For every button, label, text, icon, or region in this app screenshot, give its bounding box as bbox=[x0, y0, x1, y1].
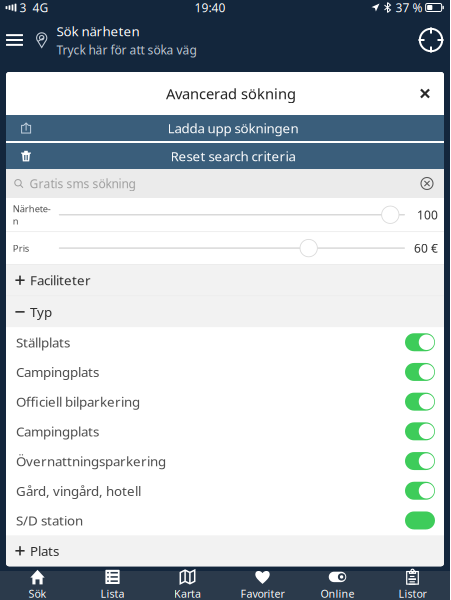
staticText: Gratis sms sökning bbox=[29, 175, 135, 191]
staticText: Gård, vingård, hotell bbox=[16, 482, 141, 500]
staticText: Sök bbox=[28, 586, 46, 600]
staticText: Listor bbox=[398, 586, 426, 600]
staticText: Karta bbox=[174, 586, 201, 600]
staticText: Sök närheten bbox=[56, 22, 139, 40]
button[interactable]: Sök bbox=[0, 571, 75, 600]
staticText: Pris bbox=[13, 242, 29, 254]
staticText: Favoriter bbox=[240, 586, 284, 600]
button[interactable]: Menu bbox=[6, 19, 36, 61]
button[interactable]: Listor bbox=[375, 571, 450, 600]
staticText: Campingplats bbox=[16, 422, 99, 440]
button[interactable]: Clear search bbox=[416, 172, 438, 194]
staticText: Övernattningsparkering bbox=[16, 452, 166, 470]
button[interactable]: Online bbox=[300, 571, 375, 600]
staticText: 60 € bbox=[414, 240, 438, 256]
button[interactable]: Faciliteter bbox=[6, 265, 444, 296]
staticText: Faciliteter bbox=[30, 271, 91, 289]
staticText: Typ bbox=[30, 303, 52, 321]
staticText: Närheten bbox=[13, 202, 51, 227]
button[interactable]: Plats bbox=[6, 535, 444, 566]
button[interactable]: Gård, vingård, hotell bbox=[6, 476, 444, 506]
staticText: 100 bbox=[417, 207, 438, 223]
staticText: Avancerad sökning bbox=[166, 84, 296, 103]
staticText: 19:40 bbox=[194, 0, 225, 15]
staticText: 3 bbox=[19, 0, 26, 15]
staticText: 37 % bbox=[395, 0, 422, 15]
button[interactable]: Officiell bilparkering bbox=[6, 387, 444, 416]
button[interactable]: Close bbox=[411, 79, 439, 107]
button[interactable]: S/D station bbox=[6, 506, 444, 535]
button[interactable]: Ställplats bbox=[6, 327, 444, 357]
staticText: Plats bbox=[30, 542, 59, 560]
staticText: Ställplats bbox=[16, 333, 70, 351]
button[interactable]: Karta bbox=[150, 571, 225, 600]
staticText: Campingplats bbox=[16, 363, 99, 381]
button[interactable]: Reset search criteria bbox=[6, 143, 444, 169]
button[interactable]: Lista bbox=[75, 571, 150, 600]
button[interactable]: Övernattningsparkering bbox=[6, 446, 444, 476]
staticText: Ladda upp sökningen bbox=[167, 119, 298, 137]
button[interactable]: Typ bbox=[6, 296, 444, 327]
staticText: S/D station bbox=[16, 512, 83, 529]
staticText: Reset search criteria bbox=[170, 147, 295, 165]
button[interactable]: Campingplats bbox=[6, 416, 444, 446]
staticText: 4G bbox=[32, 0, 48, 15]
staticText: Lista bbox=[100, 586, 124, 600]
button[interactable]: Favoriter bbox=[225, 571, 300, 600]
staticText: Tryck här för att söka väg bbox=[56, 42, 196, 58]
button[interactable]: Center on my location bbox=[418, 27, 444, 53]
button[interactable]: Campingplats bbox=[6, 357, 444, 387]
staticText: Officiell bilparkering bbox=[16, 393, 140, 410]
button[interactable]: Ladda upp sökningen bbox=[6, 115, 444, 141]
staticText: Online bbox=[320, 586, 354, 600]
